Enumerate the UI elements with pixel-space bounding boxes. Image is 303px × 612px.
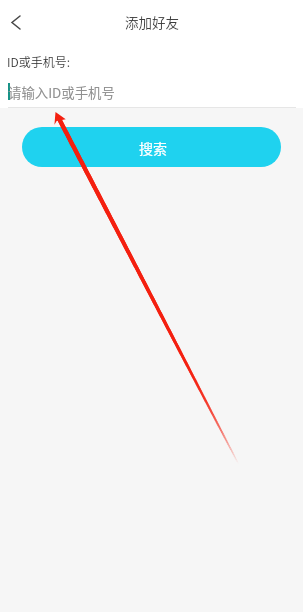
staticText: 请输入ID或手机号	[8, 82, 115, 101]
button[interactable]: Back	[0, 2, 32, 42]
staticText: 添加好友	[125, 12, 179, 32]
button[interactable]: 搜索	[22, 127, 281, 167]
staticText: 搜索	[139, 138, 167, 158]
staticText: ID或手机号:	[7, 53, 71, 70]
button[interactable]: 请输入ID或手机号	[0, 74, 303, 104]
